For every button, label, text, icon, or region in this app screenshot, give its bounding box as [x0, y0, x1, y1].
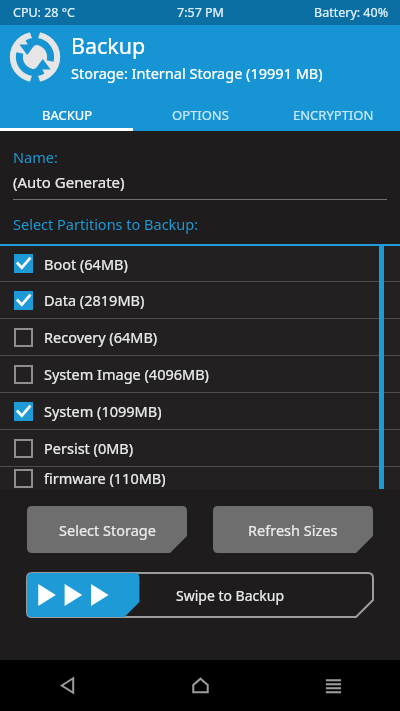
- staticText: Name:: [13, 147, 58, 167]
- button[interactable]: firmware (110MB): [0, 467, 400, 489]
- staticText: Storage: Internal Storage (19991 MB): [71, 63, 323, 83]
- button[interactable]: ENCRYPTION: [267, 98, 400, 131]
- staticText: Boot (64MB): [44, 254, 128, 274]
- button[interactable]: Persist (0MB): [0, 430, 400, 466]
- button[interactable]: System (1099MB): [0, 393, 400, 429]
- staticText: firmware (110MB): [44, 468, 166, 488]
- staticText: Persist (0MB): [44, 438, 134, 458]
- button[interactable]: BACKUP: [0, 98, 134, 131]
- button[interactable]: (Auto Generate): [13, 172, 125, 192]
- staticText: System (1099MB): [44, 401, 162, 421]
- staticText: Data (2819MB): [44, 290, 145, 310]
- staticText: BACKUP: [42, 106, 93, 124]
- button[interactable]: Data (2819MB): [0, 282, 400, 318]
- button[interactable]: System Image (4096MB): [0, 356, 400, 392]
- staticText: Swipe to Backup: [176, 586, 285, 605]
- staticText: ENCRYPTION: [293, 106, 374, 124]
- staticText: Battery: 40%: [314, 4, 389, 21]
- button[interactable]: Home: [134, 660, 267, 711]
- staticText: Refresh Sizes: [248, 520, 338, 540]
- staticText: OPTIONS: [172, 106, 229, 124]
- staticText: Select Partitions to Backup:: [13, 214, 199, 234]
- staticText: 7:57 PM: [177, 4, 224, 21]
- button[interactable]: OPTIONS: [134, 98, 267, 131]
- staticText: CPU: 28 °C: [13, 4, 76, 21]
- staticText: Select Storage: [59, 520, 156, 540]
- button[interactable]: Recovery (64MB): [0, 319, 400, 355]
- staticText: System Image (4096MB): [44, 364, 209, 384]
- button[interactable]: Boot (64MB): [0, 246, 400, 281]
- button[interactable]: Select Storage: [27, 506, 187, 553]
- button[interactable]: Refresh Sizes: [213, 506, 373, 553]
- staticText: Backup: [71, 31, 146, 60]
- button[interactable]: Back: [0, 660, 134, 711]
- staticText: Recovery (64MB): [44, 327, 158, 347]
- button[interactable]: Swipe to Backup: [27, 573, 373, 617]
- button[interactable]: Menu: [267, 660, 400, 711]
